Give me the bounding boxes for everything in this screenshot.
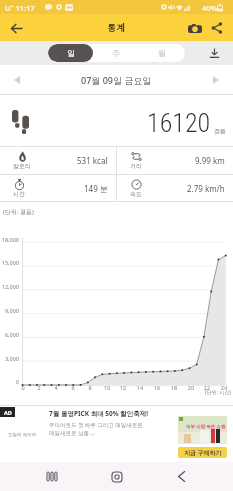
staticText: 9,000 [0,307,19,314]
staticText: 22 [201,384,213,391]
button[interactable]: Download [203,42,225,64]
staticText: 0 [17,384,29,391]
staticText: 12 [117,384,129,391]
staticText: 10 [101,384,113,391]
staticText: 149 분 [84,183,108,194]
staticText: 피부 사랑 뭐든 쇼핑 [186,423,226,429]
staticText: 18 [168,384,180,391]
button[interactable]: Home [105,465,128,488]
staticText: 걸음 [214,126,226,135]
staticText: 통계 [108,21,125,34]
button[interactable]: 속도 [117,175,233,201]
button[interactable]: Back [170,465,193,488]
button[interactable]: 일 [48,44,93,62]
staticText: 주미어로드 첫 하루 그리고 매일새로운 매일새로운 상품 ... [49,421,143,437]
staticText: 칼로리 [13,162,31,170]
staticText: 531 kcal [77,155,108,166]
button[interactable]: 월 [139,44,185,62]
staticText: 24 [218,384,230,391]
staticText: AD [4,409,12,416]
button[interactable]: 거리 [117,147,233,174]
button[interactable]: 지금 구매하기 [178,447,227,458]
staticText: 오늘의 에이브 [8,431,37,437]
staticText: 20 [185,384,197,391]
staticText: 4 [50,384,62,391]
staticText: 12,000 [0,283,19,290]
staticText: 6 [67,384,79,391]
staticText: 7월 올영PICK 최대 50% 할인축제! [49,409,149,418]
staticText: U⁺ 11:17 [5,3,35,13]
button[interactable]: AD [0,406,233,462]
button[interactable]: Next day [207,71,225,89]
staticText: 2.79 km/h [187,183,225,194]
button[interactable]: 칼로리 [0,147,116,174]
staticText: 16 [151,384,163,391]
staticText: 6,000 [0,331,19,338]
button[interactable]: Previous day [8,71,26,89]
button[interactable]: Camera [184,17,206,39]
staticText: 2 [33,384,45,391]
staticText: 15,000 [0,259,19,266]
staticText: 지금 구매하기 [184,449,222,457]
staticText: 07월 09일 금요일 [81,74,152,86]
staticText: 0 [0,378,19,385]
staticText: 월 [158,48,166,58]
button[interactable]: Recent apps [40,465,63,488]
staticText: 시간 [13,190,25,198]
button[interactable]: 주 [93,44,139,62]
staticText: 8 [84,384,96,391]
staticText: 9.99 km [195,155,225,166]
staticText: 40% [202,3,218,13]
staticText: 속도 [130,190,142,198]
staticText: 18,000 [0,236,19,243]
staticText: (단위: 시간) [205,389,231,396]
button[interactable]: Back [5,17,27,39]
button[interactable]: Share [206,17,228,39]
staticText: 16120 [147,108,211,138]
staticText: (단위: 걸음) [3,208,34,216]
staticText: 일 [67,48,75,58]
staticText: 거리 [130,162,142,170]
button[interactable]: 시간 [0,175,116,201]
staticText: 3,000 [0,355,19,362]
staticText: 주 [112,48,120,58]
staticText: 14 [134,384,146,391]
